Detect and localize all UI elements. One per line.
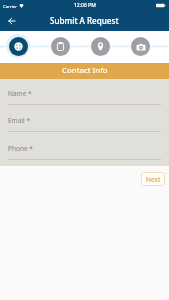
staticText: Contact Info bbox=[62, 65, 108, 76]
button[interactable]: Photo step bbox=[128, 34, 152, 58]
staticText: Carrier bbox=[3, 3, 17, 9]
button[interactable]: Back bbox=[2, 11, 21, 30]
button[interactable]: Contact info step bbox=[6, 34, 30, 58]
staticText: Email * bbox=[8, 116, 30, 125]
staticText: Next bbox=[146, 175, 161, 184]
staticText: Phone * bbox=[8, 144, 33, 153]
staticText: Submit A Request bbox=[50, 15, 119, 26]
button[interactable]: Next bbox=[141, 172, 165, 186]
staticText: Name * bbox=[8, 89, 32, 98]
button[interactable]: Request details step bbox=[48, 34, 72, 58]
button[interactable]: Location step bbox=[88, 34, 112, 58]
staticText: 12:06 PM bbox=[74, 2, 96, 9]
